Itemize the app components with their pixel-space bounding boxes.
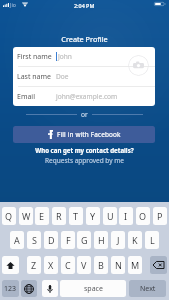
staticText: A (14, 234, 20, 246)
staticText: R (56, 210, 62, 222)
button[interactable]: N (111, 256, 125, 274)
staticText: L (150, 234, 155, 246)
button[interactable]: Email (13, 87, 155, 106)
staticText: C (65, 259, 71, 271)
button[interactable]: G (77, 231, 91, 249)
staticText: Create Profile (0, 34, 169, 44)
staticText: D (48, 234, 55, 246)
button[interactable]: U (103, 207, 117, 225)
button[interactable]: C (61, 256, 75, 274)
button[interactable]: Last name (13, 67, 155, 86)
button[interactable]: Q (2, 207, 16, 225)
button[interactable]: I (119, 207, 133, 225)
staticText: Requests approved by me (0, 156, 169, 165)
button[interactable]: Switch keyboard (21, 280, 37, 297)
staticText: Y (90, 210, 96, 222)
staticText: or (81, 110, 88, 119)
staticText: F (66, 234, 71, 246)
staticText: V (81, 259, 87, 271)
button[interactable]: space (60, 280, 126, 297)
button[interactable]: Backspace (150, 256, 167, 274)
staticText: I (124, 210, 128, 222)
staticText: John (58, 52, 72, 61)
staticText: J (117, 234, 120, 246)
button[interactable]: F (61, 231, 75, 249)
button[interactable]: S (27, 231, 41, 249)
button[interactable]: A (10, 231, 24, 249)
staticText: E (39, 210, 45, 222)
button[interactable]: K (128, 231, 142, 249)
staticText: M (131, 259, 140, 271)
button[interactable]: B (94, 256, 108, 274)
staticText: W (22, 210, 31, 222)
staticText: P (157, 210, 163, 222)
staticText: S (32, 234, 37, 246)
staticText: Doe (56, 72, 69, 81)
staticText: 123 (4, 284, 17, 294)
button[interactable]: Z (27, 256, 41, 274)
staticText: space (84, 284, 103, 294)
button[interactable]: First name (13, 47, 155, 66)
staticText: G (81, 234, 88, 246)
button[interactable]: J (111, 231, 125, 249)
staticText: Z (31, 259, 37, 271)
button[interactable]: R (52, 207, 66, 225)
button[interactable]: O (136, 207, 150, 225)
button[interactable]: W (19, 207, 33, 225)
button[interactable]: Shift (2, 256, 19, 274)
staticText: Who can get my contact details? (0, 146, 169, 154)
button[interactable]: Next (129, 280, 166, 297)
button[interactable]: E (35, 207, 49, 225)
staticText: Q (5, 210, 13, 222)
button[interactable]: Y (86, 207, 100, 225)
staticText: B (98, 259, 104, 271)
button[interactable]: 123 (2, 280, 19, 297)
staticText: 2:04 PM (74, 2, 95, 9)
button[interactable]: Voice input (42, 280, 58, 297)
staticText: Fill in with Facebook (57, 130, 121, 139)
staticText: Jio (10, 1, 16, 8)
button[interactable]: D (44, 231, 58, 249)
staticText: H (98, 234, 105, 246)
staticText: Email (17, 92, 56, 102)
staticText: K (132, 234, 138, 246)
staticText: T (73, 210, 79, 222)
button[interactable]: T (69, 207, 83, 225)
staticText: O (139, 210, 147, 222)
staticText: Next (140, 284, 156, 294)
button[interactable]: V (77, 256, 91, 274)
button[interactable]: H (94, 231, 108, 249)
staticText: First name (17, 52, 56, 62)
button[interactable]: X (44, 256, 58, 274)
staticText: X (48, 259, 54, 271)
button[interactable]: P (153, 207, 167, 225)
staticText: Last name (17, 72, 56, 82)
button[interactable]: Add profile photo (128, 55, 149, 76)
staticText: U (107, 210, 114, 222)
button[interactable]: Fill in with Facebook (13, 126, 155, 143)
staticText: N (115, 259, 122, 271)
staticText: john@example.com (56, 92, 118, 101)
button[interactable]: M (128, 256, 142, 274)
button[interactable]: L (145, 231, 159, 249)
